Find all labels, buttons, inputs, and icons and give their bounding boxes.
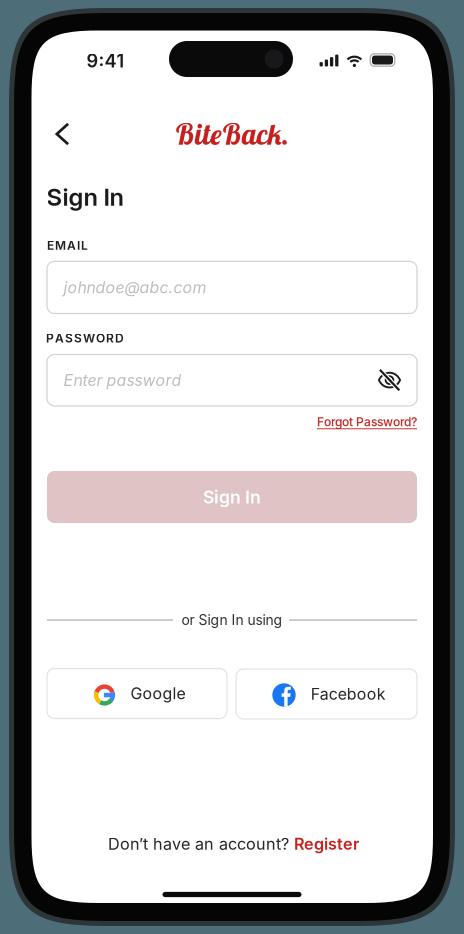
staticText: Sign In bbox=[203, 486, 261, 508]
staticText: or Sign In using bbox=[181, 612, 282, 628]
staticText: johndoe@abc.com bbox=[63, 278, 206, 297]
staticText: Enter password bbox=[63, 371, 181, 390]
staticText: P A S S W O R D bbox=[46, 331, 124, 345]
button[interactable]: Don’t have an account? bbox=[108, 834, 359, 854]
staticText: Sign In bbox=[46, 182, 123, 211]
button[interactable]: Sign In bbox=[47, 471, 417, 523]
button[interactable]: Back bbox=[40, 112, 84, 156]
staticText: Facebook bbox=[311, 684, 386, 704]
staticText: Forgot Password? bbox=[317, 415, 417, 429]
staticText: Register bbox=[294, 834, 359, 854]
staticText: BiteBack. bbox=[174, 116, 289, 152]
button[interactable]: Forgot Password? bbox=[317, 415, 417, 429]
button[interactable]: Facebook bbox=[236, 669, 417, 719]
staticText: Don’t have an account? bbox=[108, 834, 289, 854]
button[interactable]: Show password bbox=[367, 358, 411, 402]
button[interactable]: Google bbox=[47, 668, 227, 718]
staticText: Google bbox=[130, 684, 185, 703]
staticText: 9:41 bbox=[86, 50, 124, 72]
staticText: E M A I L bbox=[47, 238, 88, 252]
